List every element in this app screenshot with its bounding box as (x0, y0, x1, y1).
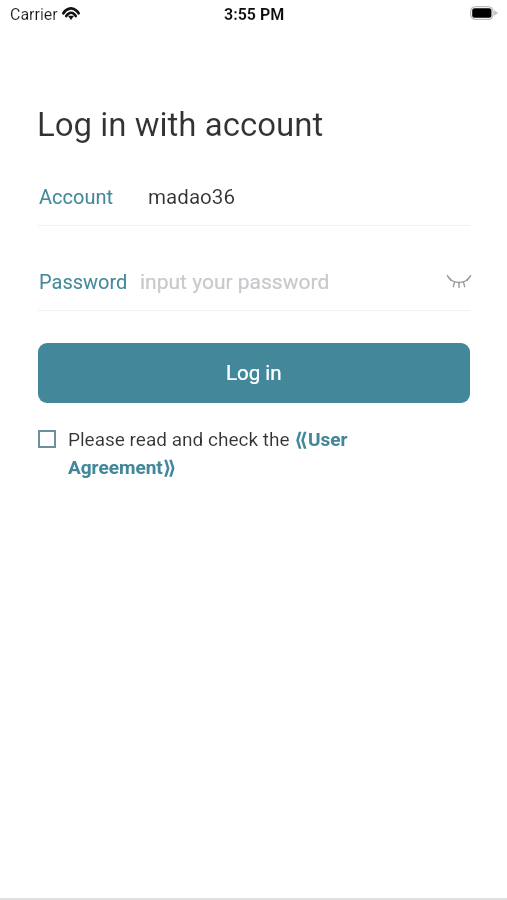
button[interactable]: Agree to the user agreement (38, 430, 56, 448)
staticText: Password (39, 270, 128, 293)
staticText: Log in with account (37, 105, 324, 144)
button[interactable]: Log in (38, 343, 470, 403)
staticText: Account (39, 185, 114, 208)
staticText: Carrier (10, 5, 58, 24)
staticText: Please read and check the ⟪User Agreemen… (68, 424, 358, 480)
staticText: madao36 (148, 185, 235, 209)
button[interactable]: Show password (437, 263, 481, 299)
staticText: Log in (226, 361, 282, 385)
staticText: input your password (140, 270, 330, 295)
button[interactable]: Please read and check the ⟪User Agreemen… (66, 423, 366, 481)
staticText: 3:55 PM (224, 5, 285, 24)
button[interactable]: Account (38, 173, 470, 225)
button[interactable]: Password (38, 258, 470, 310)
